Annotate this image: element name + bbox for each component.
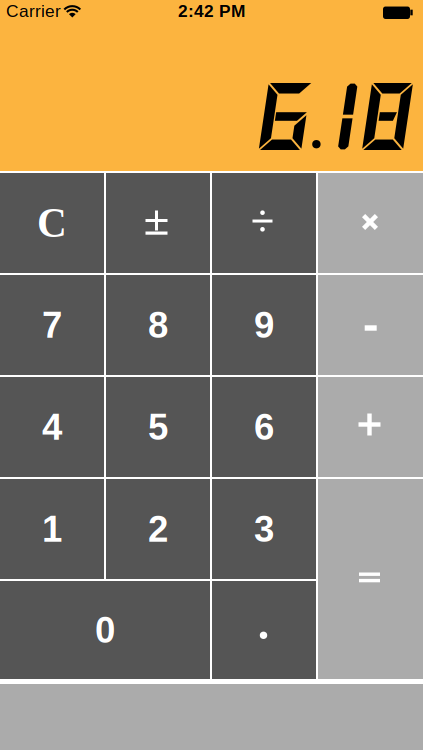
- staticText: 5: [148, 406, 168, 447]
- staticText: 1: [42, 508, 62, 549]
- button[interactable]: 0: [0, 581, 210, 679]
- staticText: 9: [254, 304, 274, 345]
- staticText: 8: [148, 304, 168, 345]
- staticText: 3: [254, 508, 274, 549]
- staticText: 6: [254, 406, 274, 447]
- button[interactable]: 4: [0, 377, 104, 477]
- staticText: 2: [148, 508, 168, 549]
- button[interactable]: 5: [106, 377, 210, 477]
- button[interactable]: 8: [106, 275, 210, 375]
- button[interactable]: [106, 173, 210, 273]
- button[interactable]: [212, 173, 316, 273]
- button[interactable]: 2: [106, 479, 210, 579]
- button[interactable]: 6: [212, 377, 316, 477]
- button[interactable]: [318, 479, 423, 679]
- staticText: 2:42 PM: [178, 1, 245, 21]
- button[interactable]: 1: [0, 479, 104, 579]
- button[interactable]: [212, 581, 316, 679]
- button[interactable]: 3: [212, 479, 316, 579]
- button[interactable]: [318, 275, 423, 375]
- staticText: 0: [95, 609, 115, 650]
- staticText: C: [37, 200, 67, 246]
- button[interactable]: C: [0, 173, 104, 273]
- staticText: 7: [42, 304, 62, 345]
- button[interactable]: 7: [0, 275, 104, 375]
- button[interactable]: [318, 173, 423, 273]
- staticText: Carrier: [6, 1, 61, 21]
- button[interactable]: [318, 377, 423, 477]
- staticText: 4: [42, 406, 62, 447]
- button[interactable]: 9: [212, 275, 316, 375]
